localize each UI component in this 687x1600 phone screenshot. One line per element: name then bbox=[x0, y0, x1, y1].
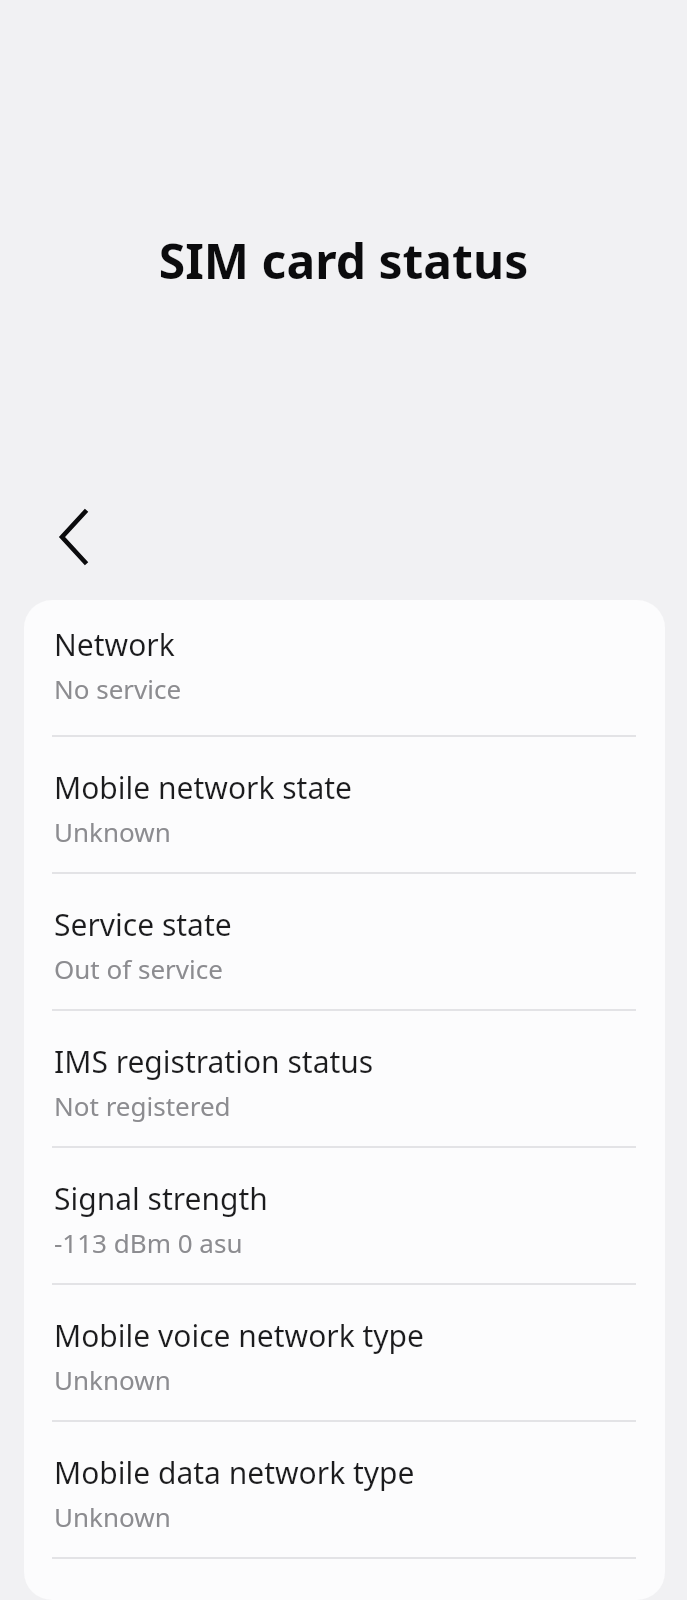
button[interactable]: Mobile data network type bbox=[24, 1422, 665, 1559]
staticText: Mobile data network type bbox=[54, 1452, 415, 1493]
staticText: Mobile voice network type bbox=[54, 1315, 424, 1356]
staticText: Not registered bbox=[54, 1088, 231, 1123]
staticText: SIM card status bbox=[0, 228, 687, 293]
button[interactable]: Mobile voice network type bbox=[24, 1285, 665, 1422]
staticText: Service state bbox=[54, 904, 232, 945]
staticText: IMS registration status bbox=[54, 1041, 374, 1082]
button[interactable]: Service state bbox=[24, 874, 665, 1011]
staticText: No service bbox=[54, 671, 182, 706]
staticText: Network bbox=[54, 624, 175, 665]
button[interactable]: Signal strength bbox=[24, 1148, 665, 1285]
button[interactable]: Mobile network state bbox=[24, 737, 665, 874]
staticText: -113 dBm 0 asu bbox=[54, 1225, 243, 1260]
button[interactable]: IMS registration status bbox=[24, 1011, 665, 1148]
staticText: Signal strength bbox=[54, 1178, 268, 1219]
staticText: Unknown bbox=[54, 814, 171, 849]
button[interactable]: Back bbox=[30, 495, 114, 579]
staticText: Out of service bbox=[54, 951, 223, 986]
staticText: Mobile network state bbox=[54, 767, 353, 808]
button[interactable]: Network bbox=[24, 600, 665, 737]
staticText: Unknown bbox=[54, 1499, 171, 1534]
staticText: Unknown bbox=[54, 1362, 171, 1397]
